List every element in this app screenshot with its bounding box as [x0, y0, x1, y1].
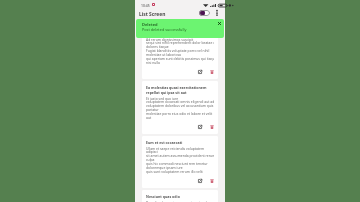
staticText: List Screen	[139, 11, 166, 18]
button[interactable]: Delete post	[210, 70, 214, 74]
staticText: Eum et est occaecati	[146, 140, 183, 145]
staticText: Repudiandae veniam quaerat sunt sed alia…	[146, 200, 207, 202]
button[interactable]: Delete post	[210, 125, 214, 129]
staticText: Ad rerum dignissimos suscipit sequi sint…	[146, 37, 214, 65]
button[interactable]: Eum et est occaecati	[142, 136, 218, 188]
staticText: Ullam et saepe reiciendis voluptatem adi…	[146, 146, 214, 174]
staticText: Deleted	[142, 22, 158, 27]
button[interactable]: Ad rerum dignissimos suscipit sequi sint…	[142, 33, 218, 79]
staticText: 10:45	[141, 3, 150, 8]
button[interactable]: Toggle dark mode	[199, 10, 210, 16]
staticText: Nesciunt quas odio	[146, 194, 180, 199]
button[interactable]: Delete post	[210, 179, 214, 183]
button[interactable]: More options	[213, 9, 221, 17]
button[interactable]: Edit post	[198, 70, 202, 74]
staticText: Ea molestias quasi exercitationem repell…	[146, 85, 214, 95]
staticText: Post deleted successfully	[142, 27, 187, 32]
button[interactable]: Ea molestias quasi exercitationem repell…	[142, 81, 218, 134]
button[interactable]: Close	[217, 21, 222, 26]
button[interactable]: Edit post	[198, 125, 202, 129]
staticText: Et iusto sed quo iure voluptatem occaeca…	[146, 96, 214, 120]
button[interactable]: Nesciunt quas odio	[142, 190, 218, 202]
button[interactable]: Edit post	[198, 179, 202, 183]
